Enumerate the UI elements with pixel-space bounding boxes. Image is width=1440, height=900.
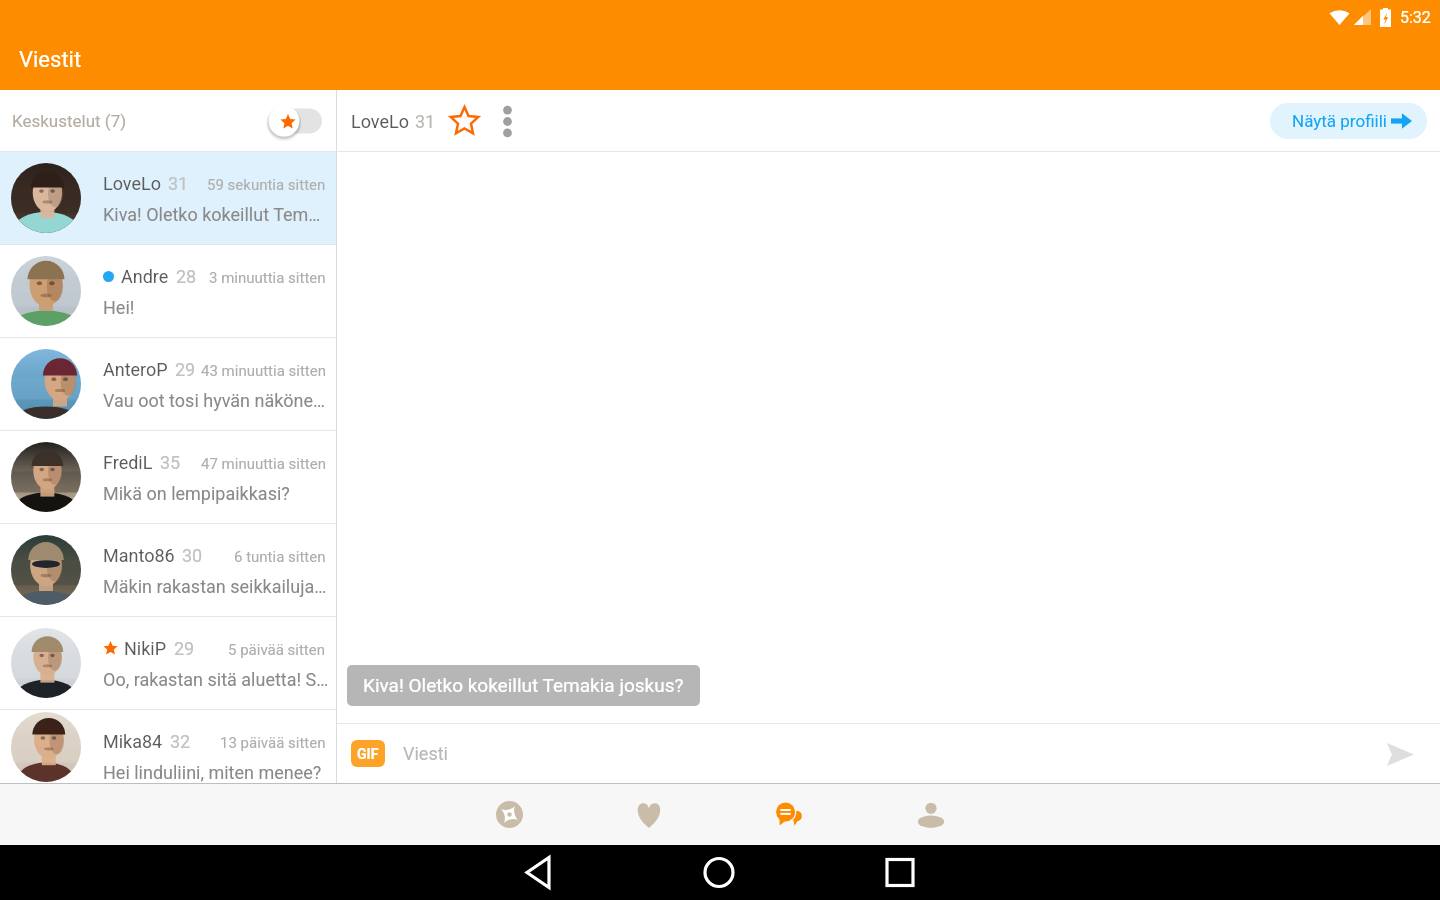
staticText: Vau oot tosi hyvän näköne… xyxy=(103,390,326,411)
staticText: AnteroP xyxy=(103,359,168,380)
staticText: Kiva! Oletko kokeillut Temakia joskus? xyxy=(363,674,684,696)
staticText: Oo, rakastan sitä aluetta! S… xyxy=(103,669,329,690)
staticText: NikiP xyxy=(124,638,167,659)
staticText: Kiva! Oletko kokeillut Tem… xyxy=(103,204,321,225)
staticText: LoveLo xyxy=(103,173,161,194)
button[interactable]: Manto86 xyxy=(0,524,337,616)
staticText: 43 minuuttia sitten xyxy=(201,362,326,380)
button[interactable]: AnteroP xyxy=(0,338,337,430)
staticText: 31 xyxy=(168,173,189,194)
button[interactable]: Lisää xyxy=(491,105,523,137)
button[interactable]: Mika84 xyxy=(0,710,337,783)
staticText: Viesti xyxy=(403,743,448,764)
button[interactable]: Suosikit xyxy=(264,103,322,139)
button[interactable]: Etsi xyxy=(439,784,579,845)
staticText: FrediL xyxy=(103,452,153,473)
button[interactable]: FrediL xyxy=(0,431,337,523)
staticText: 29 xyxy=(174,638,195,659)
staticText: 3 minuuttia sitten xyxy=(209,269,326,287)
staticText: 59 sekuntia sitten xyxy=(207,176,326,194)
button[interactable]: Profiili xyxy=(861,784,1001,845)
button[interactable]: NikiP xyxy=(0,617,337,709)
staticText: 13 päivää sitten xyxy=(220,734,326,752)
staticText: 30 xyxy=(182,545,203,566)
staticText: Manto86 xyxy=(103,545,175,566)
button[interactable]: Viestit xyxy=(719,784,859,845)
button[interactable]: LoveLo xyxy=(0,152,337,244)
staticText: Viestit xyxy=(19,47,82,73)
staticText: Hei! xyxy=(103,297,135,318)
staticText: Mäkin rakastan seikkailuja… xyxy=(103,576,327,597)
staticText: 31 xyxy=(415,111,436,132)
staticText: Keskustelut (7) xyxy=(12,111,127,131)
staticText: 6 tuntia sitten xyxy=(234,548,326,566)
staticText: 32 xyxy=(170,731,191,752)
button[interactable]: GIF xyxy=(351,740,385,767)
staticText: 5 päivää sitten xyxy=(228,641,326,659)
staticText: 35 xyxy=(160,452,181,473)
button[interactable]: Lähetä xyxy=(1377,731,1423,777)
staticText: LoveLo xyxy=(351,111,409,132)
staticText: Mikä on lempipaikkasi? xyxy=(103,483,290,504)
staticText: Mika84 xyxy=(103,731,163,752)
button[interactable]: Tykkäykset xyxy=(579,784,719,845)
staticText: Näytä profiili xyxy=(1292,111,1387,131)
staticText: GIF xyxy=(357,746,379,762)
button[interactable]: Suosikki xyxy=(449,106,479,136)
staticText: 29 xyxy=(175,359,196,380)
staticText: 28 xyxy=(176,266,197,287)
staticText: 5:32 xyxy=(1400,8,1431,27)
staticText: Andre xyxy=(121,266,169,287)
staticText: 47 minuuttia sitten xyxy=(201,455,326,473)
button[interactable]: Andre xyxy=(0,245,337,337)
staticText: Hei linduliini, miten menee? xyxy=(103,762,322,783)
button[interactable]: Näytä profiili xyxy=(1270,103,1427,139)
